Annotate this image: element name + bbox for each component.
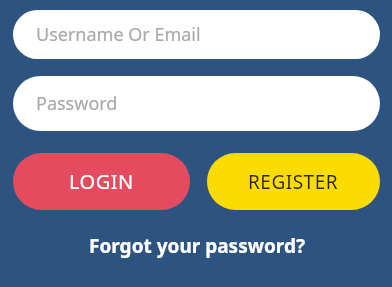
button[interactable]: REGISTER — [207, 153, 380, 210]
staticText: LOGIN — [69, 168, 134, 195]
staticText: REGISTER — [248, 169, 339, 195]
button[interactable]: LOGIN — [13, 153, 190, 210]
button[interactable]: Password — [13, 76, 380, 131]
button[interactable]: Forgot your password? — [13, 233, 380, 259]
staticText: Password — [36, 91, 118, 116]
button[interactable]: Username Or Email — [13, 10, 380, 59]
staticText: Username Or Email — [36, 22, 201, 47]
staticText: Forgot your password? — [89, 233, 305, 259]
